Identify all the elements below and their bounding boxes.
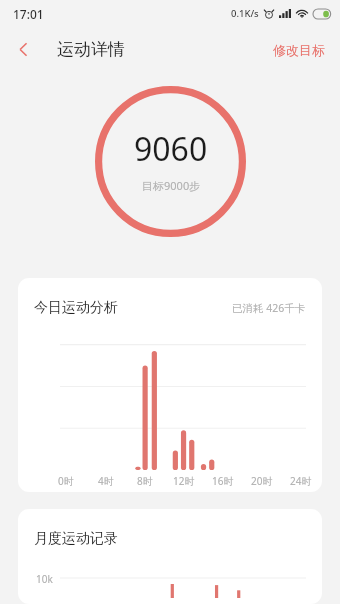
staticText: 12时 (173, 474, 195, 488)
button[interactable]: 月度运动记录 (18, 509, 322, 604)
button[interactable]: 修改目标 (258, 31, 340, 69)
staticText: 24时 (290, 474, 312, 488)
staticText: 16时 (212, 474, 234, 488)
staticText: 17:01 (13, 6, 44, 22)
staticText: 10k (36, 572, 53, 586)
staticText: 0.1K/s (231, 7, 259, 20)
staticText: 修改目标 (273, 42, 325, 58)
staticText: 0时 (58, 474, 74, 488)
staticText: 4时 (98, 474, 114, 488)
staticText: 运动详情 (57, 39, 125, 60)
staticText: 8时 (137, 474, 153, 488)
button[interactable]: Back (0, 27, 46, 72)
staticText: 今日运动分析 (34, 299, 118, 317)
staticText: 20时 (251, 474, 273, 488)
staticText: 目标9000步 (142, 178, 201, 193)
staticText: 已消耗 426千卡 (232, 301, 306, 315)
staticText: 9060 (134, 127, 208, 171)
button[interactable]: 今日运动分析 (18, 278, 322, 492)
staticText: 月度运动记录 (34, 530, 118, 548)
